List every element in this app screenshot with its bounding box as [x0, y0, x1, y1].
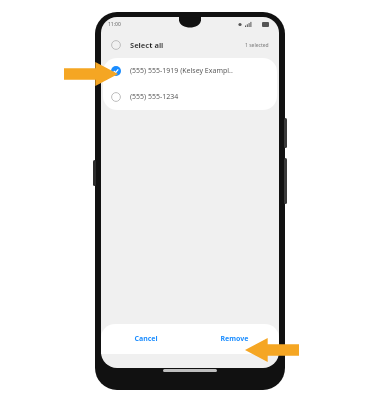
staticText: 1 selected	[245, 42, 269, 49]
staticText: Remove	[220, 334, 249, 344]
button[interactable]: (555) 555-1919 (Kelsey Exampl..	[103, 58, 277, 84]
staticText: Cancel	[134, 334, 158, 344]
staticText: Select all	[130, 40, 164, 50]
other: Pointer to Remove button	[245, 338, 299, 362]
staticText: (555) 555-1234	[130, 92, 179, 102]
button[interactable]: (555) 555-1234	[103, 84, 277, 110]
button[interactable]: Cancel	[101, 324, 190, 354]
button[interactable]: Select all	[101, 34, 279, 56]
other: Pointer to selected item	[64, 62, 118, 86]
staticText: (555) 555-1919 (Kelsey Exampl..	[130, 66, 233, 76]
button[interactable]: Remove	[190, 324, 279, 354]
staticText: 11:00	[108, 21, 121, 28]
